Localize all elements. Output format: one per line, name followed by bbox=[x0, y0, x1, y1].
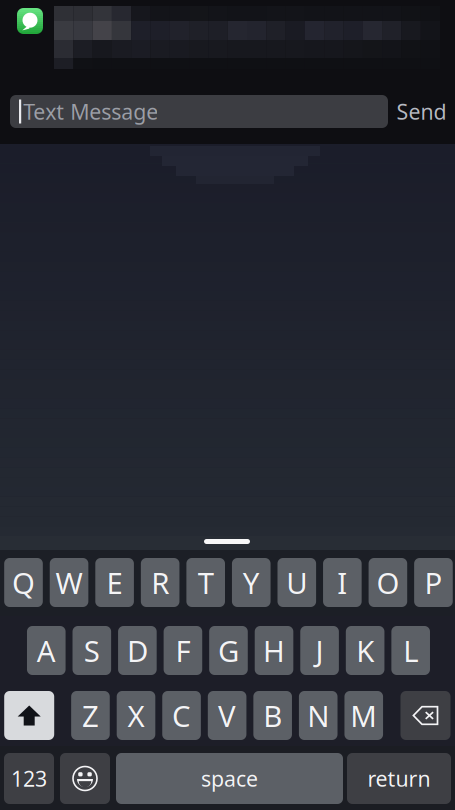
staticText: D bbox=[127, 631, 148, 670]
staticText: space bbox=[201, 764, 258, 793]
button[interactable]: G bbox=[209, 626, 248, 675]
staticText: Z bbox=[82, 696, 99, 735]
staticText: W bbox=[55, 563, 82, 602]
button[interactable]: U bbox=[277, 558, 316, 607]
button[interactable]: Y bbox=[232, 558, 270, 607]
staticText: J bbox=[316, 631, 324, 670]
staticText: 123 bbox=[11, 764, 47, 793]
button[interactable]: Space bbox=[116, 753, 343, 804]
staticText: Q bbox=[12, 563, 35, 602]
staticText: return bbox=[367, 764, 430, 793]
staticText: T bbox=[198, 563, 214, 602]
button[interactable]: X bbox=[117, 691, 155, 740]
button[interactable]: N bbox=[299, 691, 337, 740]
button[interactable]: S bbox=[72, 626, 111, 675]
staticText: E bbox=[107, 563, 123, 602]
staticText: Y bbox=[243, 563, 260, 602]
staticText: F bbox=[175, 631, 190, 670]
staticText: O bbox=[376, 563, 399, 602]
staticText: Send bbox=[396, 97, 446, 126]
staticText: H bbox=[263, 631, 285, 670]
button[interactable]: J bbox=[300, 626, 339, 675]
staticText: B bbox=[263, 696, 282, 735]
button[interactable]: W bbox=[50, 558, 88, 607]
staticText: I bbox=[337, 563, 347, 602]
staticText: K bbox=[356, 631, 374, 670]
button[interactable]: E bbox=[95, 558, 134, 607]
staticText: S bbox=[84, 631, 100, 670]
button[interactable]: B bbox=[253, 691, 292, 740]
button[interactable]: K bbox=[346, 626, 384, 675]
button[interactable]: P bbox=[414, 558, 453, 607]
staticText: N bbox=[307, 696, 329, 735]
staticText: A bbox=[37, 631, 56, 670]
button[interactable]: I bbox=[323, 558, 362, 607]
button[interactable]: C bbox=[162, 691, 201, 740]
button[interactable]: Send bbox=[394, 95, 449, 128]
staticText: Text Message bbox=[23, 97, 158, 126]
staticText: U bbox=[286, 563, 307, 602]
button[interactable]: Return bbox=[347, 753, 451, 804]
button[interactable]: V bbox=[208, 691, 246, 740]
button[interactable]: L bbox=[391, 626, 430, 675]
staticText: P bbox=[424, 563, 442, 602]
button[interactable]: M bbox=[344, 691, 383, 740]
staticText: X bbox=[127, 696, 144, 735]
button[interactable]: D bbox=[118, 626, 157, 675]
button[interactable]: Z bbox=[71, 691, 110, 740]
button[interactable]: Text Message bbox=[10, 95, 388, 128]
staticText: R bbox=[151, 563, 169, 602]
staticText: V bbox=[218, 696, 236, 735]
button[interactable]: Shift bbox=[4, 691, 54, 740]
button[interactable]: Q bbox=[4, 558, 43, 607]
button[interactable]: R bbox=[141, 558, 179, 607]
staticText: L bbox=[403, 631, 418, 670]
button[interactable]: A bbox=[27, 626, 66, 675]
button[interactable]: Delete bbox=[400, 691, 450, 740]
button[interactable]: Emoji keyboard bbox=[60, 753, 110, 804]
button[interactable]: H bbox=[255, 626, 293, 675]
button[interactable]: T bbox=[186, 558, 225, 607]
staticText: G bbox=[218, 631, 239, 670]
button[interactable]: Numbers bbox=[4, 753, 54, 804]
staticText: M bbox=[350, 696, 377, 735]
button[interactable]: O bbox=[369, 558, 407, 607]
staticText: C bbox=[172, 696, 191, 735]
button[interactable]: F bbox=[164, 626, 202, 675]
